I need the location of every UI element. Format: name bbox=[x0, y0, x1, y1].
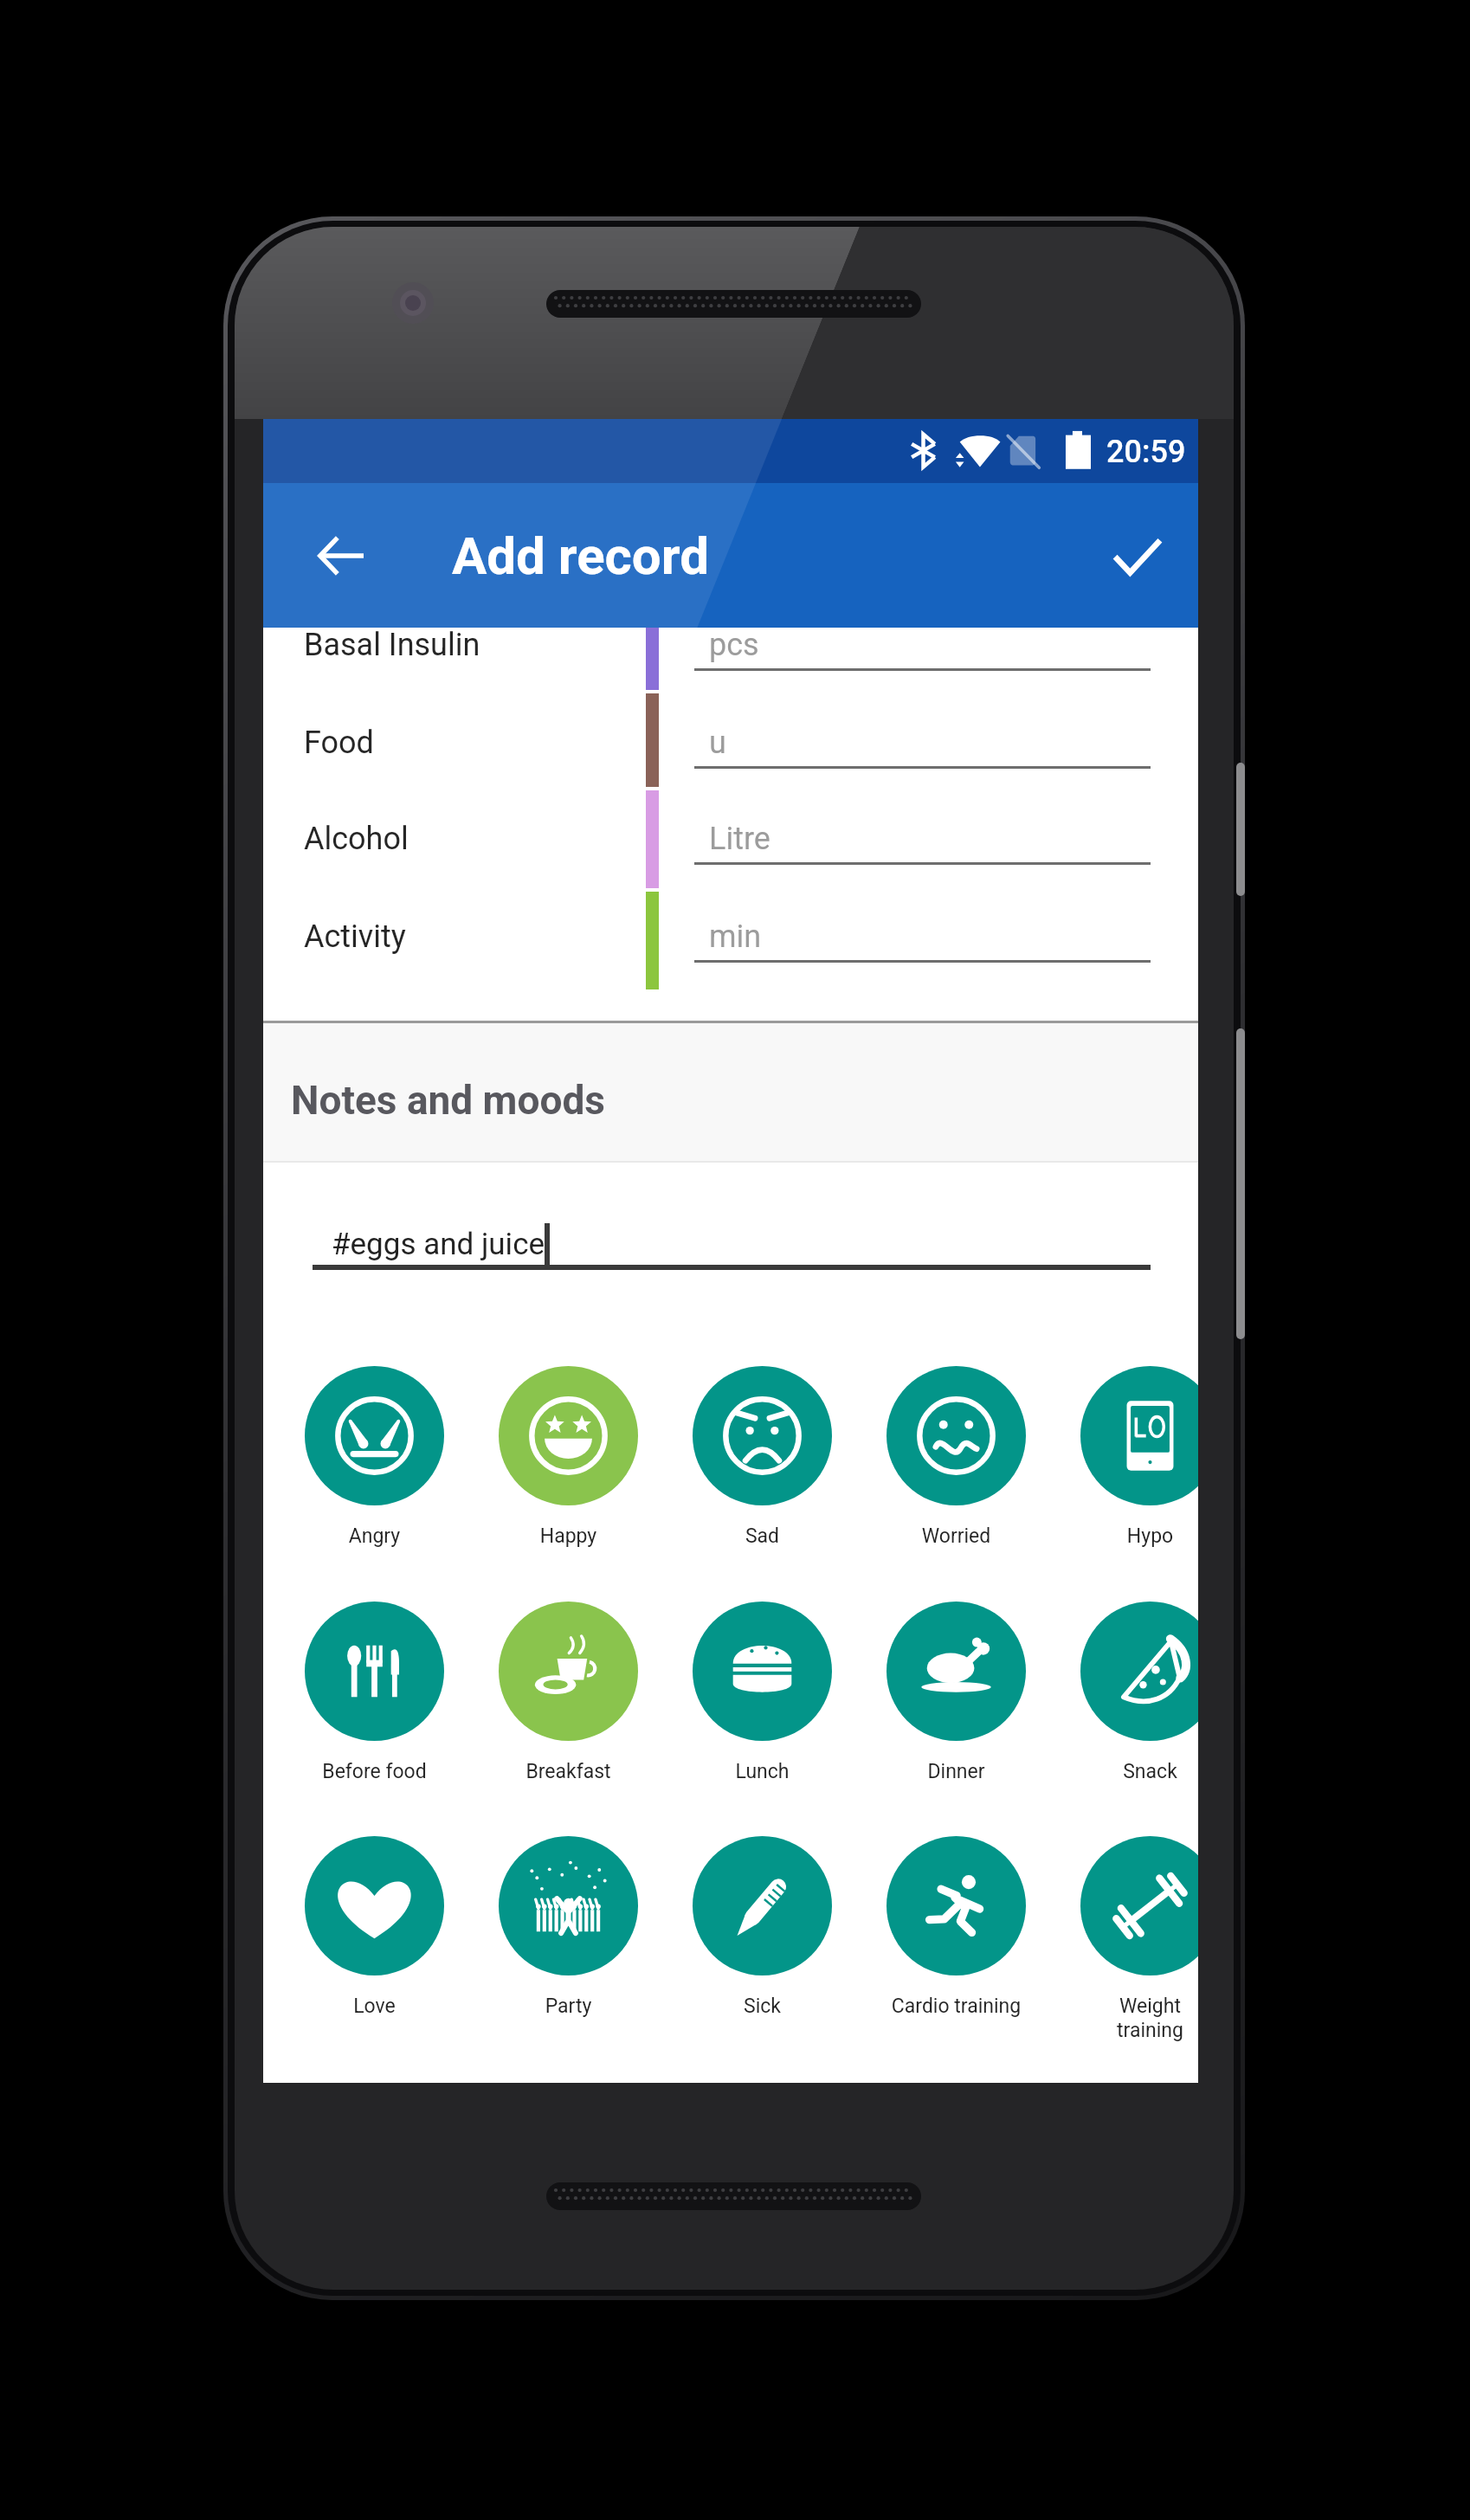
staticText: Party bbox=[503, 1995, 634, 2018]
button[interactable]: Save record bbox=[1089, 507, 1186, 604]
staticText: Activity bbox=[304, 918, 406, 955]
button[interactable]: Dinner bbox=[887, 1602, 1026, 1802]
staticText: Notes and moods bbox=[291, 1077, 605, 1124]
button[interactable]: Navigate back bbox=[293, 507, 390, 604]
staticText: Happy bbox=[503, 1524, 634, 1548]
staticText: Breakfast bbox=[503, 1760, 634, 1783]
staticText: #eggs and juice bbox=[332, 1227, 545, 1262]
button[interactable] bbox=[263, 873, 1198, 1005]
button[interactable]: Lunch bbox=[693, 1602, 832, 1802]
button[interactable] bbox=[263, 771, 1198, 904]
button[interactable]: Snack bbox=[1080, 1602, 1198, 1802]
staticText: Weight training bbox=[1085, 1995, 1198, 2042]
staticText: Sick bbox=[697, 1995, 828, 2018]
staticText: Add record bbox=[452, 525, 709, 586]
staticText: Worried bbox=[891, 1524, 1022, 1548]
button[interactable]: Party bbox=[499, 1836, 638, 2037]
staticText: 20:59 bbox=[1106, 434, 1186, 470]
staticText: Love bbox=[309, 1995, 440, 2018]
staticText: Hypo bbox=[1085, 1524, 1198, 1548]
staticText: Dinner bbox=[891, 1760, 1022, 1783]
button[interactable] bbox=[263, 609, 1198, 706]
button[interactable]: Sad bbox=[693, 1366, 832, 1567]
button[interactable]: Worried bbox=[887, 1366, 1026, 1567]
button[interactable]: Sick bbox=[693, 1836, 832, 2037]
button[interactable] bbox=[313, 1198, 1151, 1276]
staticText: Snack bbox=[1085, 1760, 1198, 1783]
staticText: Before food bbox=[309, 1760, 440, 1783]
staticText: Alcohol bbox=[304, 821, 409, 857]
button[interactable]: Angry bbox=[305, 1366, 444, 1567]
button[interactable]: Love bbox=[305, 1836, 444, 2037]
staticText: min bbox=[709, 918, 762, 955]
staticText: Basal Insulin bbox=[304, 627, 480, 663]
staticText: Lunch bbox=[697, 1760, 828, 1783]
button[interactable]: Before food bbox=[305, 1602, 444, 1802]
button[interactable]: Happy bbox=[499, 1366, 638, 1567]
staticText: pcs bbox=[709, 627, 759, 663]
staticText: Food bbox=[304, 725, 374, 761]
staticText: Angry bbox=[309, 1524, 440, 1548]
button[interactable]: Breakfast bbox=[499, 1602, 638, 1802]
staticText: u bbox=[709, 725, 726, 761]
staticText: Cardio training bbox=[891, 1995, 1022, 2018]
button[interactable]: Cardio training bbox=[887, 1836, 1026, 2037]
staticText: Litre bbox=[709, 821, 770, 857]
button[interactable]: Hypo bbox=[1080, 1366, 1198, 1567]
button[interactable]: Weight training bbox=[1080, 1836, 1198, 2037]
button[interactable] bbox=[263, 674, 1198, 802]
staticText: Sad bbox=[697, 1524, 828, 1548]
